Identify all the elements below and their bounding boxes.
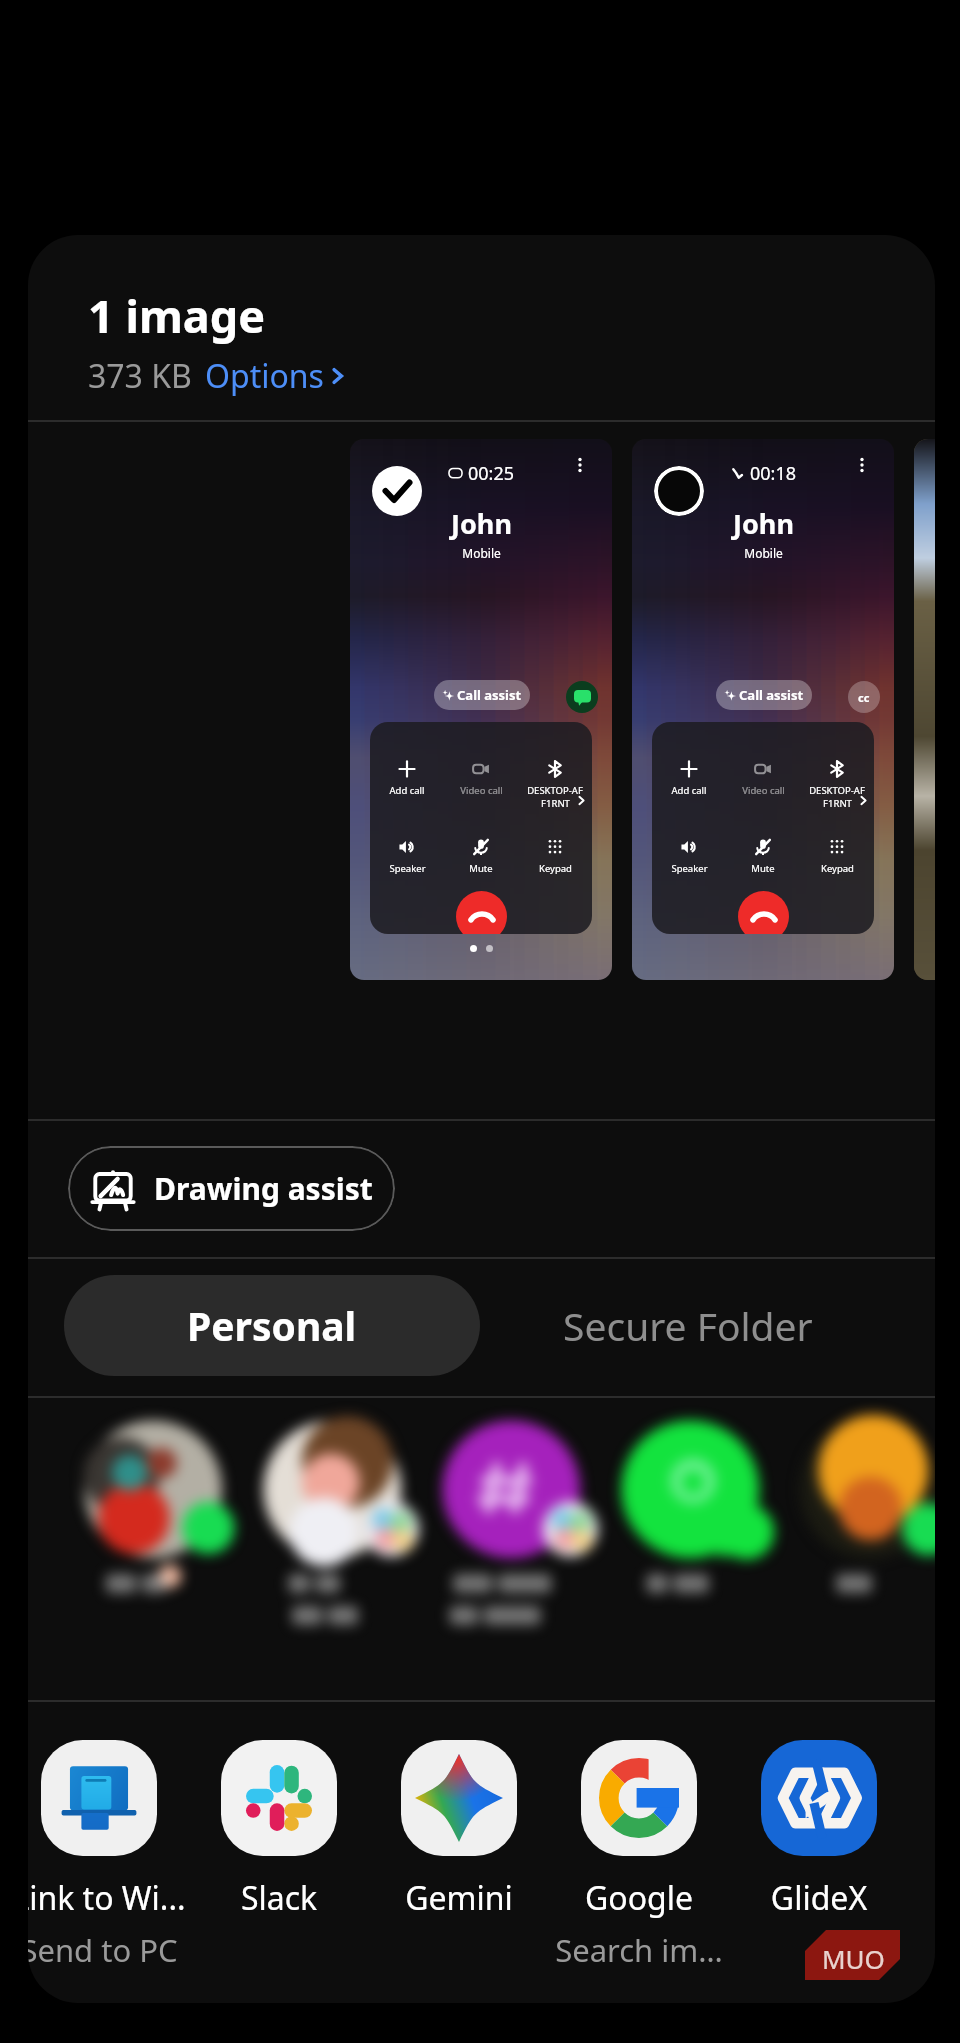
staticText: Add call [671,784,707,797]
staticText: John [733,505,794,542]
button[interactable]: Drawing assist [68,1146,395,1231]
staticText: Mute [469,862,493,875]
button[interactable]: Video call [726,760,800,797]
button[interactable]: Link to Wi... [28,1740,189,1971]
staticText: DESKTOP-AF [809,784,865,797]
button[interactable]: Speaker [652,838,726,875]
staticText: 1 image [88,285,266,346]
staticText: Send to PC [28,1929,187,1971]
button[interactable]: Live caption [848,681,880,713]
button[interactable]: Options [205,354,350,398]
staticText: Video call [742,784,785,797]
button[interactable]: Personal [64,1275,480,1376]
button[interactable] [781,1411,935,1671]
staticText: 00:25 [468,461,515,486]
staticText: Gemini [371,1876,547,1920]
button[interactable]: Slack [189,1740,369,1920]
button[interactable]: Not selected [654,466,704,516]
button[interactable]: Message [566,681,598,713]
button[interactable]: 00:18 [632,439,894,980]
button[interactable]: Secure Folder [480,1275,896,1376]
button[interactable]: Mute [444,838,518,875]
button[interactable]: 00:25 [350,439,612,980]
button[interactable]: More options [854,457,870,473]
staticText: Search ima... [551,1929,727,1971]
staticText: Personal [187,1299,357,1352]
staticText: 373 KB [88,354,192,398]
staticText: Video call [460,784,503,797]
staticText: Speaker [389,862,426,875]
button[interactable] [65,1411,244,1671]
button[interactable]: Add call [370,760,444,797]
staticText: cc [858,690,870,705]
staticText: Add call [389,784,425,797]
staticText: 00:18 [750,461,797,486]
staticText: Secure Folder [563,1299,813,1352]
button[interactable]: More options [572,457,588,473]
button[interactable]: End call [456,891,507,934]
staticText: Mobile [744,545,783,561]
button[interactable] [244,1411,423,1671]
staticText: DESKTOP-AF [527,784,583,797]
button[interactable]: DESKTOP-AF [518,760,592,810]
staticText: Drawing assist [154,1168,373,1209]
button[interactable]: Selected [372,466,422,516]
button[interactable] [423,1411,602,1671]
staticText: Keypad [821,862,854,875]
button[interactable]: Call assist [716,680,812,710]
staticText: Slack [191,1876,367,1920]
staticText: Call assist [739,686,804,704]
staticText: Speaker [671,862,708,875]
staticText: Keypad [539,862,572,875]
button[interactable] [602,1411,781,1671]
button[interactable]: Mute [726,838,800,875]
button[interactable]: Video call [444,760,518,797]
staticText: MUO [822,1941,885,1976]
button[interactable]: Gemini [369,1740,549,1920]
staticText: GlideX [731,1876,907,1920]
button[interactable]: Google [549,1740,729,1971]
staticText: Mute [751,862,775,875]
staticText: Google [551,1876,727,1920]
button[interactable]: End call [738,891,789,934]
button[interactable]: GlideX [729,1740,909,1920]
button[interactable]: Keypad [800,838,874,875]
staticText: Options [205,354,324,398]
staticText: Link to Wi... [28,1876,187,1920]
button[interactable]: Call assist [434,680,530,710]
staticText: Call assist [457,686,522,704]
button[interactable]: DESKTOP-AF [800,760,874,810]
staticText: John [451,505,512,542]
staticText: F1RNT [541,797,570,810]
staticText: F1RNT [823,797,852,810]
button[interactable]: Speaker [370,838,444,875]
button[interactable]: Add call [652,760,726,797]
button[interactable]: Keypad [518,838,592,875]
staticText: Mobile [462,545,501,561]
